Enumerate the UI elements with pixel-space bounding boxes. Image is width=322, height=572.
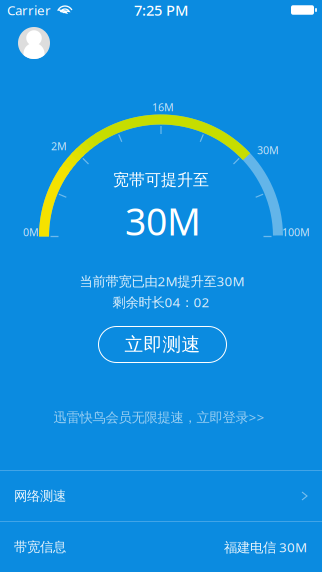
staticText: 30M [257,143,279,157]
button[interactable]: 立即测速 [98,326,226,362]
button[interactable]: Profile [18,27,50,59]
staticText: 剩余时长04：02 [112,293,209,311]
staticText: 带宽信息 [14,539,66,555]
staticText: 当前带宽已由2M提升至30M [79,272,244,290]
staticText: 0M [23,225,39,239]
button[interactable]: 网络测速 [0,471,322,521]
staticText: 迅雷快鸟会员无限提速，立即登录>> [53,408,264,426]
button[interactable]: 带宽信息 [0,522,322,572]
staticText: 立即测速 [124,333,200,356]
staticText: 100M [282,225,310,239]
staticText: 30M [125,196,201,246]
staticText: 7:25 PM [134,0,188,20]
staticText: 2M [51,139,67,153]
button[interactable]: 迅雷快鸟会员无限提速，立即登录>> [53,408,264,426]
staticText: 宽带可提升至 [113,170,209,190]
staticText: 网络测速 [14,488,66,504]
staticText: 16M [152,100,174,114]
staticText: Carrier [7,1,51,19]
staticText: 福建电信 30M [224,538,307,556]
